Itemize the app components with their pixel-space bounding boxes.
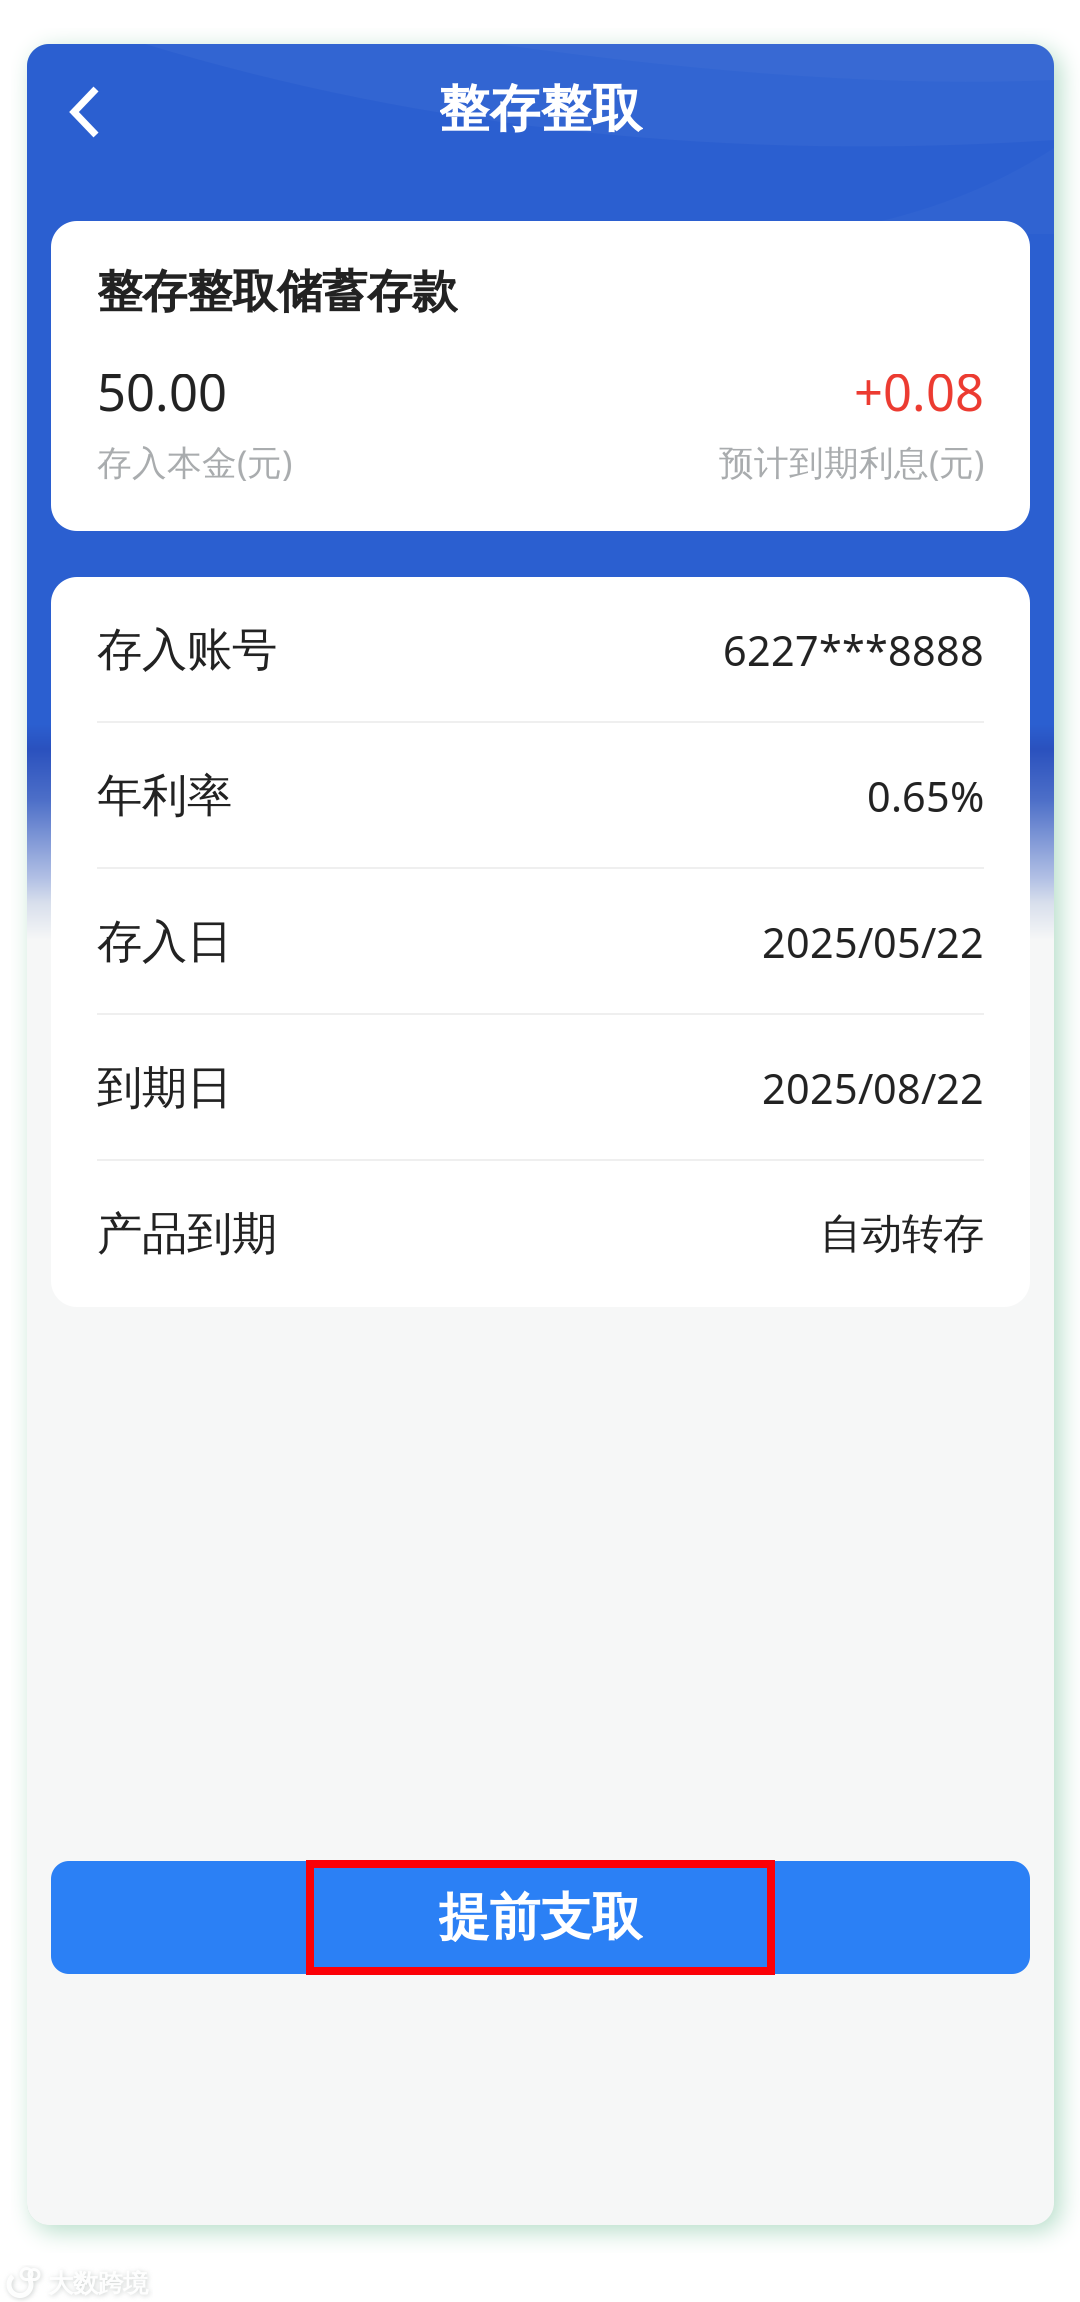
button[interactable]: 年利率: [51, 723, 1030, 869]
staticText: 整存整取储蓄存款: [97, 264, 457, 320]
staticText: 存入本金(元): [97, 439, 292, 485]
staticText: +0.08: [854, 358, 984, 425]
staticText: 2025/08/22: [762, 1061, 984, 1115]
staticText: 0.65%: [867, 769, 984, 823]
staticText: 50.00: [97, 358, 227, 425]
staticText: 到期日: [97, 1060, 232, 1116]
button[interactable]: 存入日: [51, 869, 1030, 1015]
staticText: 存入账号: [97, 622, 277, 678]
staticText: 整存整取: [438, 78, 642, 140]
button[interactable]: 到期日: [51, 1015, 1030, 1161]
staticText: 2025/05/22: [762, 915, 984, 969]
button[interactable]: 存入账号: [51, 577, 1030, 723]
button[interactable]: 产品到期: [51, 1161, 1030, 1307]
staticText: 存入日: [97, 914, 232, 970]
staticText: 6227***8888: [723, 623, 984, 677]
staticText: 预计到期利息(元): [719, 439, 984, 485]
button[interactable]: 返回: [27, 44, 141, 177]
button[interactable]: 提前支取: [51, 1861, 1030, 1974]
staticText: 年利率: [97, 768, 232, 824]
staticText: 自动转存: [820, 1209, 984, 1259]
staticText: 提前支取: [438, 1886, 642, 1949]
staticText: 大数跨境: [48, 2268, 148, 2299]
staticText: 产品到期: [97, 1206, 277, 1262]
